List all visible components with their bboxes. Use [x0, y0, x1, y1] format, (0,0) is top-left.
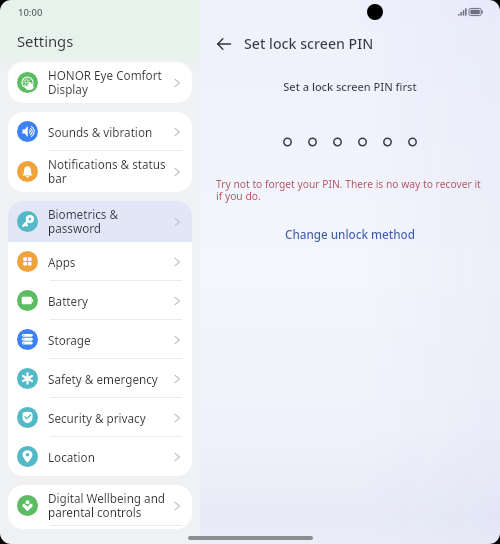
staticText: 10:00	[18, 6, 43, 19]
button[interactable]: Apps	[8, 242, 192, 281]
staticText: Battery	[48, 293, 172, 309]
staticText: Biometrics & password	[48, 206, 172, 237]
staticText: Change unlock method	[285, 226, 415, 242]
staticText: Digital Wellbeing and parental controls	[48, 490, 172, 521]
button[interactable]: Security & privacy	[8, 398, 192, 437]
button[interactable]: Storage	[8, 320, 192, 359]
staticText: Apps	[48, 254, 172, 270]
staticText: Notifications & status bar	[48, 156, 172, 187]
button[interactable]: Location	[8, 437, 192, 476]
staticText: Storage	[48, 332, 172, 348]
staticText: Location	[48, 449, 172, 465]
button[interactable]: Back	[211, 31, 237, 57]
staticText: Try not to forget your PIN. There is no …	[216, 177, 482, 203]
button[interactable]: Battery	[8, 281, 192, 320]
staticText: HONOR Eye Comfort Display	[48, 67, 172, 98]
button[interactable]: Safety & emergency	[8, 359, 192, 398]
staticText: Security & privacy	[48, 410, 172, 426]
staticText: Safety & emergency	[48, 371, 172, 387]
staticText: Set lock screen PIN	[244, 34, 374, 53]
button[interactable]: Digital Wellbeing and parental controls	[8, 485, 192, 526]
staticText: Set a lock screen PIN first	[200, 79, 500, 94]
staticText: Sounds & vibration	[48, 124, 172, 140]
button[interactable]: Biometrics & password	[8, 201, 192, 242]
button[interactable]: Change unlock method	[277, 223, 423, 245]
button[interactable]: HONOR Eye Comfort Display	[8, 62, 192, 103]
button[interactable]: Notifications & status bar	[8, 151, 192, 192]
staticText: Settings	[17, 31, 74, 51]
button[interactable]: Sounds & vibration	[8, 112, 192, 151]
